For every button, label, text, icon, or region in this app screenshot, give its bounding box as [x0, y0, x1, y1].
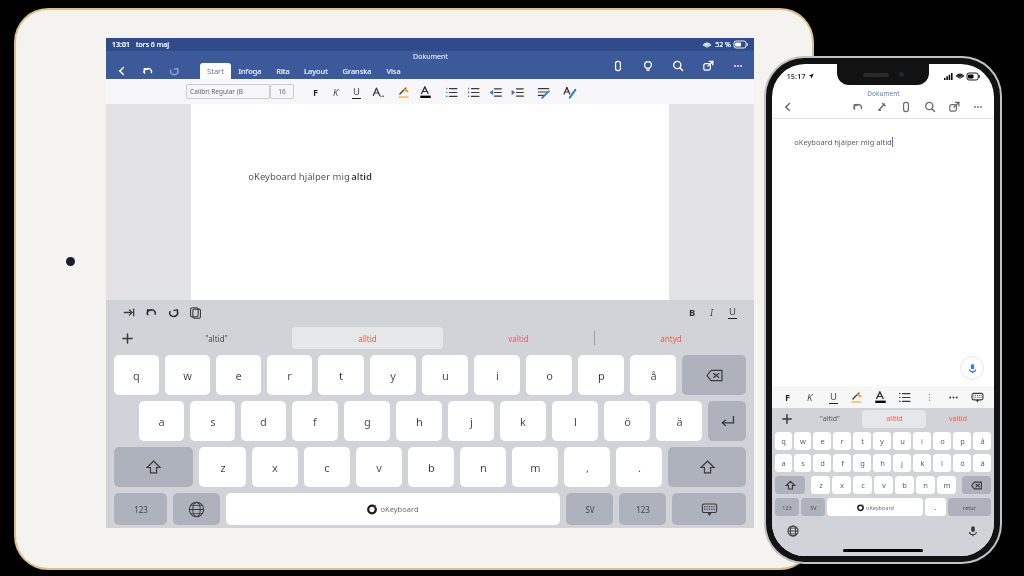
button[interactable]: h	[396, 401, 442, 441]
button[interactable]: oKeyboard	[226, 493, 560, 525]
button[interactable]: m	[937, 476, 956, 494]
button[interactable]: U	[346, 81, 366, 103]
button[interactable]: k	[500, 401, 546, 441]
button[interactable]: n	[916, 476, 935, 494]
button[interactable]: Increase indent	[506, 81, 528, 103]
button[interactable]: q	[114, 355, 159, 395]
button[interactable]: p	[953, 432, 971, 450]
button[interactable]: Phone layout	[898, 99, 914, 115]
button[interactable]: B	[682, 301, 702, 323]
button[interactable]: x	[832, 476, 851, 494]
button[interactable]: b	[408, 447, 454, 487]
button[interactable]: Hide keyboard	[966, 386, 988, 408]
button[interactable]: u	[422, 355, 468, 395]
button[interactable]: c	[304, 447, 350, 487]
button[interactable]: ö	[953, 454, 971, 472]
button[interactable]: 123	[775, 498, 799, 516]
button[interactable]: SV	[801, 498, 825, 516]
button[interactable]: b	[895, 476, 914, 494]
button[interactable]: antyd	[595, 333, 746, 344]
button[interactable]: j	[893, 454, 911, 472]
button[interactable]: Font color	[869, 386, 891, 408]
button[interactable]: r	[267, 355, 312, 395]
button[interactable]: Undo	[140, 301, 162, 323]
button[interactable]: i	[913, 432, 931, 450]
button[interactable]: Bullets	[440, 81, 462, 103]
button[interactable]: Numbering	[462, 81, 484, 103]
button[interactable]: f	[292, 401, 338, 441]
button[interactable]: w	[165, 355, 210, 395]
button[interactable]: y	[370, 355, 416, 395]
button[interactable]: i	[474, 355, 520, 395]
button[interactable]: 16	[270, 84, 294, 99]
button[interactable]: Paragraph	[532, 81, 554, 103]
button[interactable]: a	[775, 454, 792, 472]
button[interactable]: Redo	[162, 301, 184, 323]
button[interactable]: Text effects	[366, 81, 388, 103]
button[interactable]: More options	[918, 386, 940, 408]
button[interactable]: Calibri Regular (B	[186, 84, 270, 99]
button[interactable]: oKeyboard	[827, 498, 923, 516]
button[interactable]: m	[512, 447, 558, 487]
button[interactable]: Language	[784, 522, 802, 540]
button[interactable]: z	[811, 476, 830, 494]
button[interactable]: t	[853, 432, 871, 450]
button[interactable]: Bullets	[893, 386, 915, 408]
button[interactable]: y	[873, 432, 891, 450]
button[interactable]: e	[813, 432, 831, 450]
button[interactable]: Visa	[379, 63, 408, 79]
button[interactable]: w	[794, 432, 811, 450]
button[interactable]: å	[630, 355, 676, 395]
button[interactable]: Infoga	[231, 63, 269, 79]
button[interactable]: ,	[564, 447, 610, 487]
button[interactable]: Start	[200, 63, 231, 79]
button[interactable]: l	[933, 454, 951, 472]
button[interactable]: e	[216, 355, 261, 395]
button[interactable]: n	[460, 447, 506, 487]
button[interactable]: Back	[780, 99, 796, 115]
button[interactable]: h	[873, 454, 891, 472]
button[interactable]: Layout	[297, 63, 335, 79]
button[interactable]: Hide keyboard	[672, 493, 746, 525]
button[interactable]: Tab	[118, 301, 140, 323]
button[interactable]: More	[942, 386, 964, 408]
button[interactable]: ä	[656, 401, 702, 441]
button[interactable]: Ideas	[640, 58, 656, 74]
button[interactable]: F	[306, 81, 326, 103]
button[interactable]: More	[730, 58, 746, 74]
button[interactable]: "altid"	[140, 333, 292, 344]
button[interactable]: alltid	[292, 327, 443, 349]
button[interactable]: Undo	[140, 63, 156, 79]
button[interactable]: å	[973, 432, 991, 450]
button[interactable]: j	[448, 401, 494, 441]
button[interactable]: Paste	[184, 301, 206, 323]
button[interactable]: x	[252, 447, 298, 487]
button[interactable]: Back	[114, 63, 130, 79]
button[interactable]: Backspace	[962, 476, 991, 494]
button[interactable]: r	[833, 432, 851, 450]
button[interactable]: SV	[566, 493, 613, 525]
button[interactable]: Language	[173, 493, 220, 525]
button[interactable]: v	[874, 476, 893, 494]
button[interactable]: Highlight	[845, 386, 867, 408]
button[interactable]: retur	[948, 498, 991, 516]
button[interactable]: Share	[700, 58, 716, 74]
button[interactable]: l	[552, 401, 598, 441]
button[interactable]: p	[578, 355, 624, 395]
button[interactable]: ä	[973, 454, 991, 472]
button[interactable]: Dictate	[964, 522, 982, 540]
button[interactable]: s	[794, 454, 811, 472]
button[interactable]: ö	[604, 401, 650, 441]
button[interactable]: .	[925, 498, 946, 516]
button[interactable]: o	[526, 355, 572, 395]
button[interactable]: s	[190, 401, 235, 441]
button[interactable]: Phone layout	[610, 58, 626, 74]
button[interactable]: a	[139, 401, 184, 441]
button[interactable]: .	[616, 447, 662, 487]
button[interactable]: "altid"	[798, 414, 862, 424]
button[interactable]: Font color	[414, 81, 436, 103]
button[interactable]: Redo	[166, 63, 182, 79]
button[interactable]: U	[823, 386, 843, 408]
button[interactable]: d	[813, 454, 831, 472]
button[interactable]: u	[893, 432, 911, 450]
